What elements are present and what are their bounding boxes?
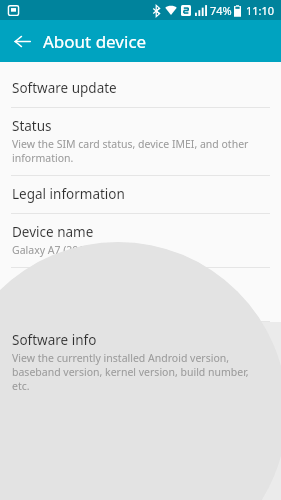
staticText: 74% — [210, 3, 232, 18]
button[interactable]: Navigate up — [7, 26, 37, 56]
staticText: Status — [12, 117, 52, 135]
button[interactable]: Device name — [0, 214, 281, 267]
staticText: Legal information — [12, 185, 125, 203]
staticText: Device name — [12, 223, 94, 241]
staticText: About device — [43, 30, 147, 53]
button[interactable]: Software info — [0, 322, 281, 500]
staticText: Software update — [12, 79, 117, 97]
button[interactable]: Status — [0, 108, 281, 175]
staticText: View the SIM card status, device IMEI, a… — [12, 137, 267, 165]
staticText: View the currently installed Android ver… — [12, 351, 267, 393]
staticText: Galaxy A7 (2016) — [12, 243, 94, 257]
button[interactable]: Legal information — [0, 176, 281, 213]
staticText: 11:10 — [246, 3, 275, 18]
button[interactable]: Software update — [0, 70, 281, 107]
staticText: Software info — [12, 331, 97, 349]
button[interactable]: Model number — [0, 268, 281, 321]
